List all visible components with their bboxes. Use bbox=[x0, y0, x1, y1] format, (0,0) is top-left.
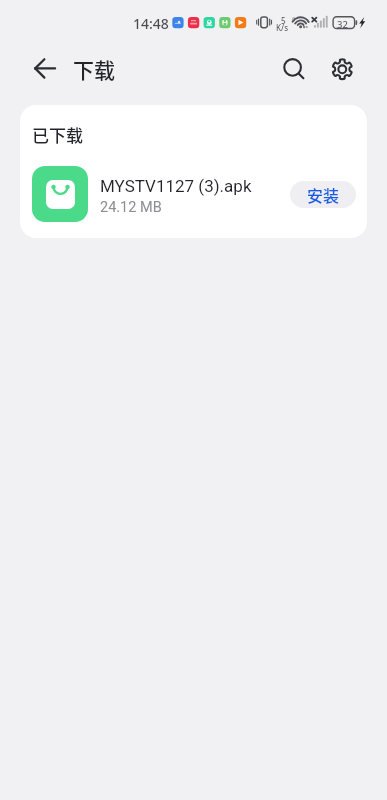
staticText: 6 bbox=[292, 15, 296, 23]
staticText: 安装 bbox=[307, 183, 340, 206]
staticText: 已下载 bbox=[32, 122, 83, 147]
button[interactable]: 安装 bbox=[290, 181, 356, 208]
staticText: 32 bbox=[337, 18, 348, 31]
staticText: 下载 bbox=[73, 54, 115, 84]
staticText: 24.12 MB bbox=[100, 199, 162, 216]
staticText: MYSTV1127 (3).apk bbox=[100, 176, 252, 196]
button[interactable]: Back bbox=[23, 46, 67, 92]
staticText: K/s bbox=[276, 22, 289, 33]
staticText: 14:48 bbox=[133, 14, 169, 33]
staticText: 5 bbox=[281, 15, 286, 26]
button[interactable]: Settings bbox=[320, 46, 364, 92]
button[interactable]: Search bbox=[272, 46, 316, 92]
button[interactable]: MYSTV1127 (3).apk bbox=[20, 153, 367, 238]
